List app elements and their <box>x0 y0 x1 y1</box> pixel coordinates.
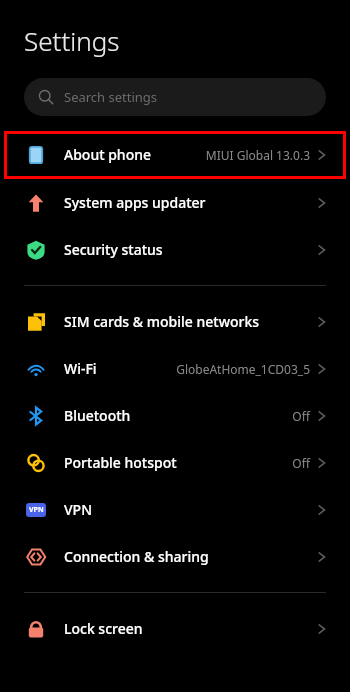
button[interactable]: Portable hotspot <box>0 439 350 486</box>
staticText: Lock screen <box>64 619 143 638</box>
other: VPN <box>26 503 46 517</box>
button[interactable]: SIM cards and mobile networks <box>0 298 350 345</box>
staticText: Off <box>292 408 310 424</box>
other: Lock screen <box>26 619 46 639</box>
staticText: Wi-Fi <box>64 359 97 378</box>
other: About phone <box>26 145 46 165</box>
staticText: Portable hotspot <box>64 453 177 472</box>
button[interactable]: About phone <box>4 131 346 178</box>
button[interactable]: Security status <box>0 226 350 273</box>
other: Bluetooth <box>26 406 46 426</box>
staticText: Security status <box>64 240 163 259</box>
other: SIM cards and mobile networks <box>26 312 46 332</box>
button[interactable]: Bluetooth <box>0 392 350 439</box>
staticText: GlobeAtHome_1CD03_5 <box>176 361 310 377</box>
button[interactable]: Wi-Fi <box>0 345 350 392</box>
other: Portable hotspot <box>26 453 46 473</box>
staticText: Off <box>292 455 310 471</box>
staticText: VPN <box>29 505 44 515</box>
other: Wi-Fi <box>26 359 46 379</box>
other: System apps updater <box>26 193 46 213</box>
staticText: SIM cards & mobile networks <box>64 312 260 331</box>
button[interactable]: Connection and sharing <box>0 533 350 580</box>
staticText: System apps updater <box>64 193 206 212</box>
button[interactable]: VPN <box>0 486 350 533</box>
staticText: Settings <box>24 23 120 58</box>
staticText: VPN <box>64 500 93 519</box>
staticText: Connection & sharing <box>64 547 209 566</box>
staticText: About phone <box>64 145 152 164</box>
staticText: Search settings <box>64 88 158 106</box>
button[interactable]: Lock screen <box>0 605 350 652</box>
other: Security status <box>26 240 46 260</box>
button[interactable]: System apps updater <box>0 179 350 226</box>
other: Connection and sharing <box>26 547 46 567</box>
staticText: MIUI Global 13.0.3 <box>205 147 310 163</box>
button[interactable]: Search settings <box>24 78 326 116</box>
staticText: Bluetooth <box>64 406 131 425</box>
